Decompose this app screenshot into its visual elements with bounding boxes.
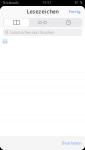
staticText: Fertig: [69, 9, 81, 14]
button[interactable]: Verlauf: [55, 18, 81, 27]
staticText: Bearbeiten: [62, 140, 81, 146]
button[interactable]: Leseliste: [29, 18, 55, 27]
button[interactable]: Favoriten: [0, 38, 85, 45]
staticText: 15:57: [42, 1, 51, 5]
button[interactable]: Lesezeichen durchsuchen: [3, 28, 82, 36]
staticText: Lesezeichen durchsuchen: [10, 30, 54, 35]
staticText: Telekom.de: [3, 1, 19, 5]
button[interactable]: Bearbeiten: [59, 138, 83, 148]
staticText: Lesezeichen: [26, 8, 58, 15]
staticText: 81 %: [75, 1, 82, 5]
button[interactable]: Lesezeichen: [3, 18, 29, 27]
button[interactable]: Fertig: [66, 7, 83, 16]
